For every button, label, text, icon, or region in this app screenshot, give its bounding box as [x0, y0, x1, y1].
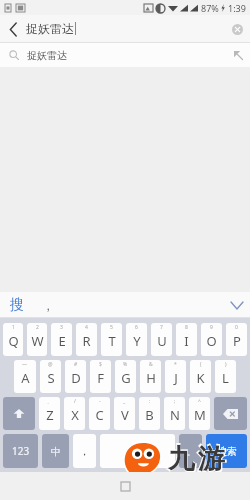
staticText: K: [196, 369, 205, 387]
button[interactable]: 7: [151, 323, 172, 356]
button[interactable]: 0: [226, 323, 247, 356]
button[interactable]: Back: [0, 16, 26, 42]
button[interactable]: 4: [76, 323, 97, 356]
staticText: F: [97, 369, 104, 387]
staticText: 游: [196, 440, 226, 478]
staticText: _: [123, 398, 126, 405]
staticText: #: [74, 361, 78, 368]
staticText: ^: [198, 398, 201, 405]
button[interactable]: —: [14, 360, 36, 393]
staticText: G: [121, 369, 131, 387]
staticText: N: [170, 406, 180, 424]
staticText: Y: [133, 332, 141, 350]
button[interactable]: 搜: [8, 296, 26, 314]
button[interactable]: 、: [39, 397, 60, 430]
staticText: A: [21, 369, 30, 387]
staticText: 5: [110, 324, 113, 331]
staticText: J: [174, 369, 178, 387]
staticText: *: [174, 361, 177, 368]
button[interactable]: Clear text: [224, 16, 250, 42]
staticText: 6: [135, 324, 138, 331]
button[interactable]: $: [90, 360, 111, 393]
button[interactable]: 。: [179, 434, 202, 468]
staticText: &: [149, 361, 153, 368]
staticText: O: [206, 332, 217, 350]
button[interactable]: *: [165, 360, 186, 393]
staticText: 、: [47, 398, 52, 404]
button[interactable]: 3: [51, 323, 72, 356]
staticText: 87%: [201, 2, 219, 14]
staticText: 九: [166, 440, 196, 478]
button[interactable]: 2: [27, 323, 47, 356]
staticText: 捉妖雷达: [27, 49, 67, 62]
staticText: Z: [46, 406, 54, 424]
staticText: @: [48, 361, 53, 368]
button[interactable]: @: [40, 360, 61, 393]
staticText: 捉妖雷达: [26, 21, 74, 36]
button[interactable]: ): [215, 360, 236, 393]
staticText: Q: [8, 332, 19, 350]
button[interactable]: 中: [42, 434, 69, 468]
button[interactable]: Expand candidates: [224, 292, 250, 318]
staticText: $: [99, 361, 102, 368]
staticText: L: [222, 369, 229, 387]
button[interactable]: Use this suggestion: [226, 43, 250, 67]
staticText: 9: [210, 324, 213, 331]
staticText: —: [22, 361, 28, 368]
staticText: 九: [168, 442, 195, 476]
staticText: :: [149, 398, 151, 405]
staticText: 。: [186, 445, 196, 458]
staticText: %: [123, 361, 128, 368]
button[interactable]: %: [115, 360, 136, 393]
staticText: 1:39: [228, 2, 246, 14]
button[interactable]: ^: [189, 397, 210, 430]
staticText: 123: [12, 444, 30, 458]
staticText: 4: [85, 324, 88, 331]
staticText: I: [184, 332, 189, 350]
button[interactable]: :: [139, 397, 160, 430]
staticText: 1: [12, 324, 15, 331]
button[interactable]: Home: [113, 474, 137, 498]
staticText: 2: [36, 324, 39, 331]
button[interactable]: 9: [201, 323, 222, 356]
staticText: 搜: [10, 296, 24, 314]
button[interactable]: 8: [176, 323, 197, 356]
button[interactable]: &: [140, 360, 161, 393]
staticText: 0: [235, 324, 238, 331]
button[interactable]: ，: [73, 434, 96, 468]
staticText: ): [225, 361, 227, 368]
button[interactable]: ;: [164, 397, 185, 430]
button[interactable]: -: [89, 397, 110, 430]
staticText: U: [157, 332, 167, 350]
button[interactable]: _: [114, 397, 135, 430]
button[interactable]: Backspace: [214, 397, 247, 430]
button[interactable]: ，: [40, 298, 56, 313]
staticText: 8: [185, 324, 188, 331]
staticText: ，: [79, 444, 90, 458]
button[interactable]: Shift: [3, 397, 35, 430]
staticText: W: [31, 332, 44, 350]
staticText: (: [200, 361, 202, 368]
staticText: D: [71, 369, 81, 387]
staticText: E: [58, 332, 66, 350]
button[interactable]: /: [64, 397, 85, 430]
button[interactable]: 5: [101, 323, 122, 356]
staticText: X: [71, 406, 79, 424]
button[interactable]: 1: [3, 323, 23, 356]
button[interactable]: Search: [206, 434, 247, 468]
staticText: H: [146, 369, 156, 387]
staticText: P: [233, 332, 241, 350]
button[interactable]: 捉妖雷达: [0, 43, 250, 67]
staticText: /: [74, 398, 76, 405]
staticText: B: [145, 406, 154, 424]
button[interactable]: 6: [126, 323, 147, 356]
button[interactable]: Space: [100, 434, 175, 468]
staticText: S: [47, 369, 55, 387]
staticText: 3: [60, 324, 63, 331]
staticText: 7: [160, 324, 163, 331]
button[interactable]: #: [65, 360, 86, 393]
staticText: -: [99, 398, 101, 405]
staticText: T: [108, 332, 116, 350]
button[interactable]: 123: [3, 434, 38, 468]
button[interactable]: (: [190, 360, 211, 393]
